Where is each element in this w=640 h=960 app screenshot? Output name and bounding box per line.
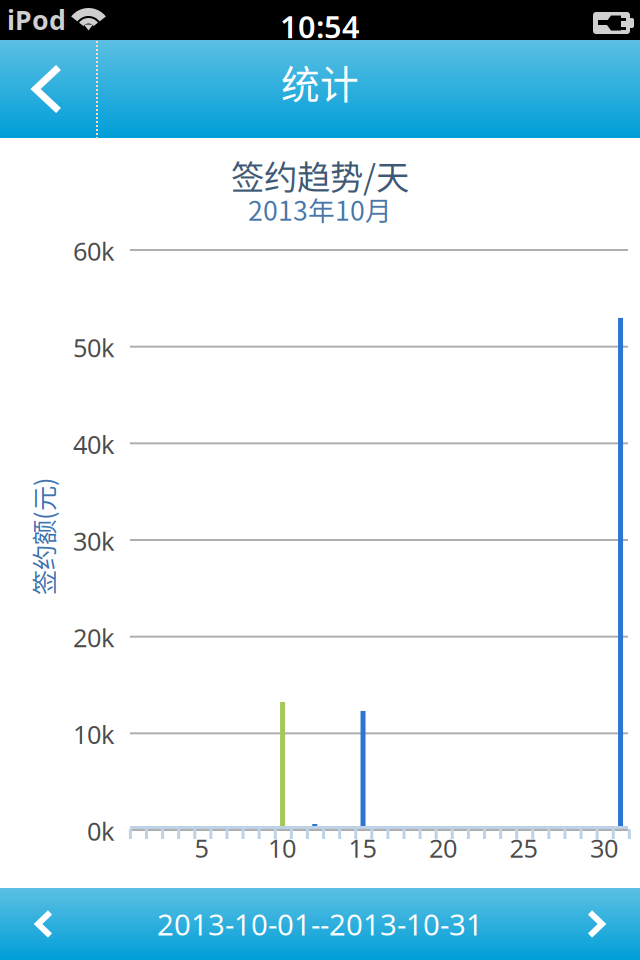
staticText: 0k: [87, 814, 115, 848]
staticText: 30: [590, 831, 618, 865]
staticText: 2013年10月: [248, 190, 392, 228]
staticText: 50k: [73, 331, 115, 364]
staticText: 签约趋势/天: [231, 151, 409, 199]
button[interactable]: Next period: [552, 888, 640, 960]
button[interactable]: Back: [0, 40, 95, 138]
staticText: 25: [509, 831, 537, 865]
staticText: 5: [195, 831, 209, 865]
staticText: 10:54: [280, 6, 360, 47]
staticText: 10: [268, 831, 296, 865]
staticText: 60k: [73, 234, 115, 268]
staticText: 统计: [281, 54, 359, 110]
staticText: iPod: [7, 2, 66, 37]
staticText: 30k: [73, 524, 115, 558]
staticText: 10k: [73, 717, 115, 751]
button[interactable]: Previous period: [0, 888, 88, 960]
staticText: 20k: [73, 621, 115, 654]
staticText: 2013-10-01--2013-10-31: [157, 904, 483, 943]
staticText: 20: [429, 831, 457, 865]
staticText: 签约额(元): [0, 518, 102, 554]
staticText: 15: [348, 831, 376, 865]
staticText: 40k: [73, 427, 115, 461]
